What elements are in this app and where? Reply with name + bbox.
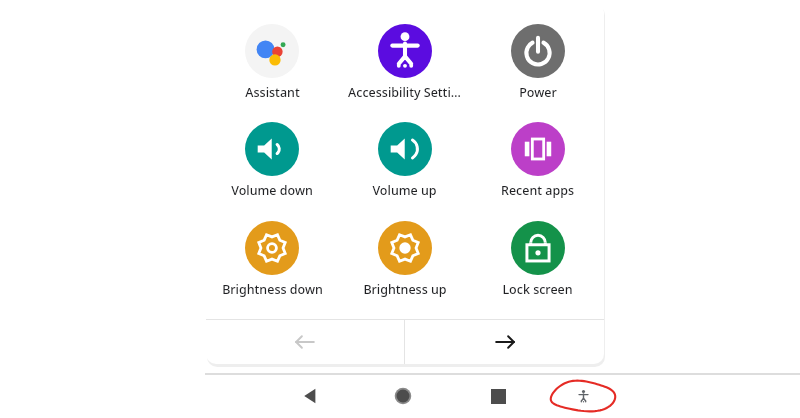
button[interactable]: Back bbox=[297, 383, 323, 409]
staticText: Volume down bbox=[231, 182, 313, 199]
button[interactable]: Assistant bbox=[210, 24, 334, 101]
button[interactable]: Lock screen bbox=[475, 221, 600, 298]
staticText: Assistant bbox=[245, 84, 300, 101]
button[interactable]: Accessibility menu bbox=[570, 383, 596, 409]
staticText: Power bbox=[519, 84, 557, 101]
button[interactable]: Home bbox=[390, 383, 416, 409]
button[interactable]: Brightness up bbox=[342, 221, 467, 298]
button[interactable]: Brightness down bbox=[210, 221, 334, 298]
button[interactable]: Volume down bbox=[210, 122, 334, 199]
button[interactable]: Overview bbox=[485, 383, 511, 409]
button[interactable]: Power bbox=[475, 24, 600, 101]
button[interactable]: Previous page bbox=[206, 320, 404, 364]
staticText: Volume up bbox=[372, 182, 437, 199]
button[interactable]: Recent apps bbox=[475, 122, 600, 199]
staticText: Recent apps bbox=[501, 182, 574, 199]
button[interactable]: Accessibility Setti… bbox=[342, 24, 467, 101]
staticText: Brightness down bbox=[222, 281, 323, 298]
button[interactable]: Volume up bbox=[342, 122, 467, 199]
button[interactable]: Next page bbox=[405, 320, 604, 364]
staticText: Brightness up bbox=[363, 281, 447, 298]
staticText: Accessibility Setti… bbox=[348, 84, 461, 101]
staticText: Lock screen bbox=[502, 281, 573, 298]
